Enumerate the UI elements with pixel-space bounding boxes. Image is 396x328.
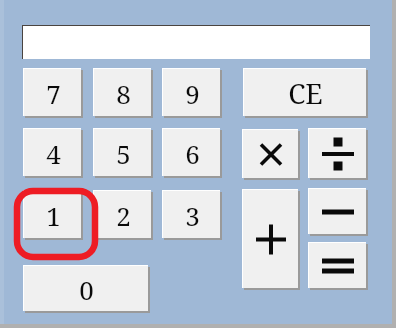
- staticText: 3: [185, 198, 200, 233]
- staticText: 7: [46, 76, 61, 111]
- button[interactable]: 3: [162, 190, 222, 240]
- button[interactable]: 0: [23, 265, 150, 313]
- button[interactable]: 8: [93, 68, 153, 118]
- button[interactable]: Multiply: [242, 129, 300, 180]
- staticText: 2: [116, 198, 131, 233]
- staticText: 6: [185, 136, 200, 171]
- button[interactable]: 2: [93, 190, 153, 240]
- button[interactable]: Divide: [308, 128, 368, 180]
- button[interactable]: 6: [162, 128, 222, 178]
- button[interactable]: 4: [23, 128, 83, 178]
- staticText: 9: [185, 76, 200, 111]
- button[interactable]: [22, 25, 370, 59]
- button[interactable]: Equals: [308, 242, 368, 290]
- button[interactable]: 1: [23, 190, 83, 240]
- staticText: CE: [288, 74, 323, 112]
- staticText: 0: [79, 272, 94, 307]
- staticText: 4: [46, 136, 61, 171]
- staticText: 1: [46, 198, 61, 233]
- staticText: 5: [116, 136, 131, 171]
- button[interactable]: Add: [242, 189, 300, 290]
- button[interactable]: 5: [93, 128, 153, 178]
- button[interactable]: 7: [23, 68, 83, 118]
- button[interactable]: 9: [162, 68, 222, 118]
- staticText: 8: [116, 76, 131, 111]
- button[interactable]: CE: [243, 68, 368, 118]
- button[interactable]: Subtract: [308, 188, 368, 236]
